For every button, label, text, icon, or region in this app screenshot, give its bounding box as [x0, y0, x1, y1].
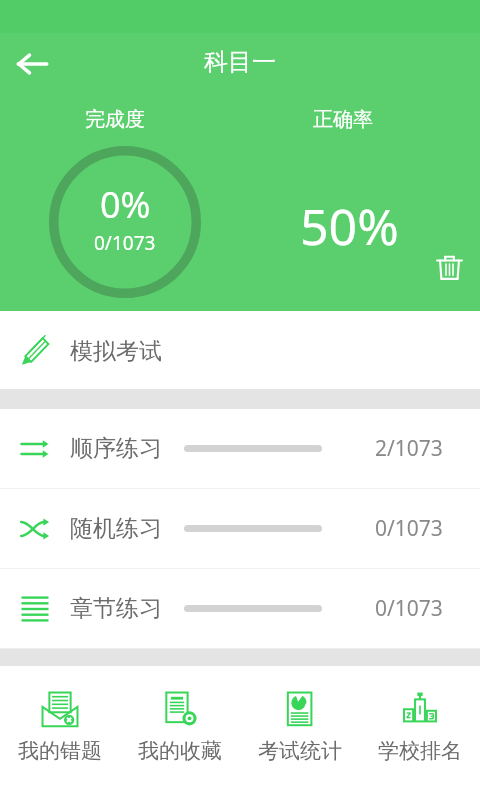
- staticText: 随机练习: [70, 514, 162, 543]
- button[interactable]: 考试统计: [240, 666, 360, 800]
- staticText: 学校排名: [378, 738, 462, 764]
- staticText: 顺序练习: [70, 434, 162, 463]
- staticText: 模拟考试: [70, 337, 162, 366]
- button[interactable]: Delete: [428, 246, 470, 288]
- staticText: 0/1073: [375, 594, 443, 623]
- staticText: 0/1073: [375, 514, 443, 543]
- staticText: 科目一: [0, 47, 480, 77]
- staticText: 0%: [100, 180, 151, 229]
- staticText: 50%: [300, 192, 399, 260]
- button[interactable]: 学校排名: [360, 666, 480, 800]
- staticText: 正确率: [313, 107, 373, 132]
- button[interactable]: 我的收藏: [120, 666, 240, 800]
- button[interactable]: 章节练习: [0, 569, 480, 648]
- button[interactable]: Back: [4, 36, 60, 92]
- button[interactable]: 顺序练习: [0, 409, 480, 488]
- staticText: 完成度: [85, 107, 145, 132]
- staticText: 考试统计: [258, 738, 342, 764]
- button[interactable]: 随机练习: [0, 489, 480, 568]
- button[interactable]: 我的错题: [0, 666, 120, 800]
- staticText: 2/1073: [375, 434, 443, 463]
- staticText: 我的错题: [18, 738, 102, 764]
- staticText: 章节练习: [70, 594, 162, 623]
- staticText: 我的收藏: [138, 738, 222, 764]
- staticText: 0/1073: [94, 230, 156, 256]
- button[interactable]: 模拟考试: [0, 313, 480, 389]
